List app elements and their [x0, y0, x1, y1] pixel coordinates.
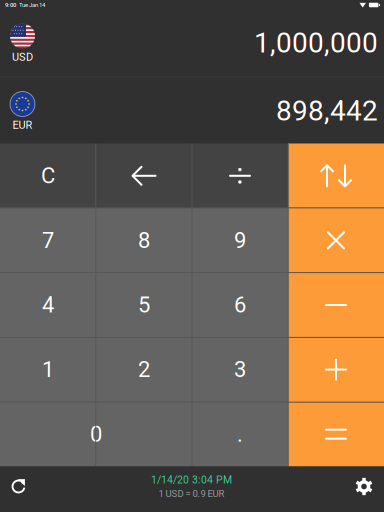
button[interactable]: Settings — [345, 466, 383, 506]
staticText: 1/14/20 3:04 PM — [151, 474, 232, 486]
staticText: 5 — [138, 292, 150, 318]
button[interactable]: Divide — [192, 143, 288, 208]
staticText: 898,442 — [276, 94, 378, 127]
button[interactable] — [192, 402, 288, 466]
staticText: 3 — [234, 357, 246, 382]
button[interactable] — [96, 273, 192, 337]
staticText: 7 — [42, 227, 54, 253]
staticText: 4 — [42, 292, 54, 318]
staticText: 6 — [234, 292, 246, 318]
button[interactable]: Backspace — [96, 143, 192, 208]
button[interactable] — [192, 208, 288, 273]
staticText: 0 — [90, 421, 102, 447]
button[interactable] — [192, 273, 288, 337]
button[interactable] — [96, 337, 192, 402]
button[interactable] — [0, 273, 96, 337]
button[interactable]: Clear — [0, 143, 96, 208]
button[interactable]: Refresh rates — [0, 466, 38, 506]
button[interactable]: Swap currencies — [288, 143, 384, 208]
staticText: Tue Jan 14 — [19, 1, 45, 8]
button[interactable] — [96, 208, 192, 273]
button[interactable] — [0, 337, 96, 402]
button[interactable] — [0, 402, 192, 466]
staticText: 1 — [42, 357, 54, 382]
staticText: EUR — [12, 118, 32, 131]
staticText: C — [41, 163, 55, 189]
button[interactable]: Add — [288, 337, 384, 402]
staticText: . — [237, 421, 243, 447]
button[interactable]: Equals — [288, 402, 384, 466]
staticText: 9 — [234, 227, 246, 253]
button[interactable]: Subtract — [288, 273, 384, 337]
button[interactable] — [0, 208, 96, 273]
staticText: 9:00 — [5, 1, 16, 8]
staticText: 2 — [138, 357, 150, 382]
staticText: 1 USD = 0.9 EUR — [158, 488, 224, 499]
button[interactable]: EUR — [0, 77, 384, 143]
staticText: 8 — [138, 227, 150, 253]
button[interactable]: USD — [0, 16, 384, 76]
button[interactable]: Multiply — [288, 208, 384, 273]
staticText: USD — [12, 50, 33, 63]
staticText: 1,000,000 — [254, 26, 378, 59]
button[interactable] — [192, 337, 288, 402]
